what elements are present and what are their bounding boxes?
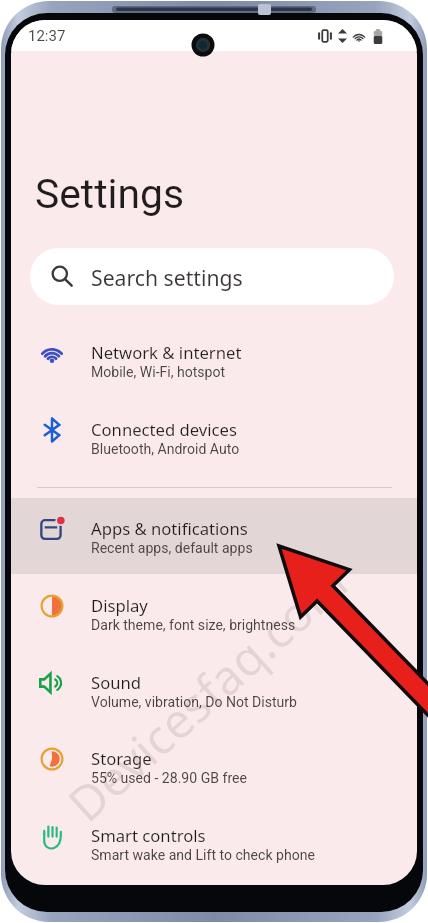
other: Vibrate — [317, 28, 333, 44]
button[interactable]: Connected devices — [11, 398, 417, 474]
staticText: Smart wake and Lift to check phone — [91, 847, 315, 863]
button[interactable]: Smart controls — [11, 804, 417, 880]
staticText: Apps & notifications — [91, 517, 248, 540]
button[interactable]: Sound — [11, 651, 417, 727]
staticText: Volume, vibration, Do Not Disturb — [91, 694, 298, 710]
staticText: Network & internet — [91, 341, 242, 364]
staticText: Storage — [91, 747, 152, 770]
staticText: Bluetooth, Android Auto — [91, 441, 240, 457]
staticText: Recent apps, default apps — [91, 540, 253, 556]
staticText: 12:37 — [28, 27, 66, 45]
staticText: Settings — [35, 170, 184, 218]
button[interactable]: Storage — [11, 727, 417, 803]
staticText: Dark theme, font size, brightness — [91, 617, 296, 633]
staticText: 55% used - 28.90 GB free — [91, 770, 247, 786]
staticText: Sound — [91, 671, 142, 694]
button[interactable]: Display — [11, 574, 417, 650]
staticText: Connected devices — [91, 418, 237, 441]
button[interactable]: Apps & notifications — [11, 497, 417, 573]
staticText: Mobile, Wi-Fi, hotspot — [91, 364, 226, 380]
staticText: Display — [91, 594, 148, 617]
staticText: Search settings — [91, 263, 243, 292]
button[interactable]: Search settings — [30, 248, 394, 305]
button[interactable]: Network & internet — [11, 321, 417, 397]
staticText: Smart controls — [91, 824, 206, 847]
staticText: Devicesfaq.com — [54, 550, 360, 835]
